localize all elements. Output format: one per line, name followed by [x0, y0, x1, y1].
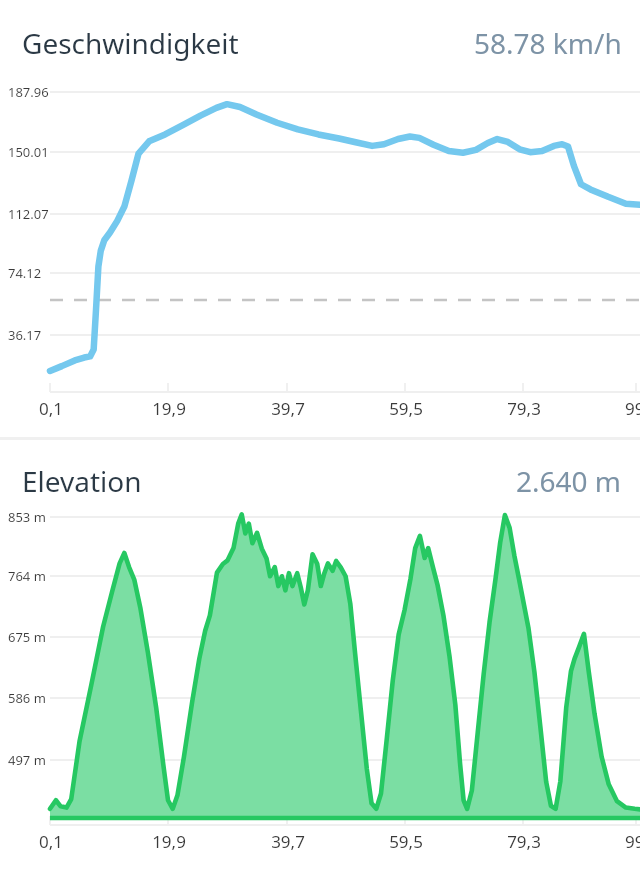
staticText: 853 m [8, 508, 46, 526]
staticText: 112.07 [8, 205, 49, 223]
staticText: 59,5 [384, 397, 428, 420]
staticText: 59,5 [384, 830, 428, 853]
staticText: Geschwindigkeit [22, 24, 239, 62]
staticText: Elevation [22, 462, 142, 500]
staticText: 99, [615, 397, 640, 420]
staticText: 187.96 [8, 83, 49, 101]
staticText: 79,3 [502, 397, 546, 420]
staticText: 39,7 [266, 830, 310, 853]
staticText: 19,9 [147, 830, 191, 853]
staticText: 74.12 [8, 264, 42, 282]
staticText: 79,3 [502, 830, 546, 853]
staticText: 764 m [8, 567, 46, 585]
staticText: 36.17 [8, 326, 42, 344]
staticText: 2.640 m [516, 462, 622, 500]
staticText: 99, [615, 830, 640, 853]
staticText: 0,1 [29, 830, 73, 853]
staticText: 19,9 [147, 397, 191, 420]
staticText: 0,1 [29, 397, 73, 420]
button[interactable]: Geschwindigkeit [0, 0, 640, 437]
button[interactable]: Elevation [0, 440, 640, 872]
staticText: 586 m [8, 689, 46, 707]
staticText: 497 m [8, 751, 46, 769]
staticText: 150.01 [8, 143, 49, 161]
staticText: 675 m [8, 628, 46, 646]
staticText: 39,7 [266, 397, 310, 420]
staticText: 58.78 km/h [474, 24, 622, 62]
